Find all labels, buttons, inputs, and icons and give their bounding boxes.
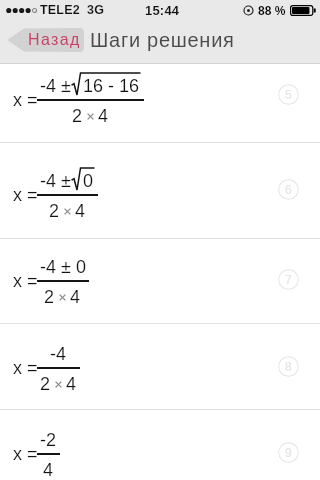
staticText: x = xyxy=(13,358,38,378)
staticText: 2 xyxy=(40,374,51,394)
staticText: 4 xyxy=(43,460,54,480)
staticText: TELE2 xyxy=(40,3,80,17)
staticText: 4 xyxy=(75,201,86,221)
staticText: 4 xyxy=(70,287,81,307)
staticText: -4 xyxy=(50,344,67,364)
staticText: 7 xyxy=(285,273,292,286)
button[interactable]: x = xyxy=(0,239,320,324)
staticText: 2 xyxy=(44,287,55,307)
staticText: 4 xyxy=(66,374,77,394)
staticText: 16 - 16 xyxy=(83,76,140,96)
staticText: x = xyxy=(13,271,38,291)
staticText: 3G xyxy=(87,3,105,17)
staticText: -2 xyxy=(40,430,57,450)
button[interactable]: x = xyxy=(0,410,320,480)
staticText: x = xyxy=(13,444,38,464)
button[interactable]: x = xyxy=(0,324,320,410)
staticText: -4 ± xyxy=(40,76,71,96)
staticText: 5 xyxy=(285,88,292,101)
staticText: 2 xyxy=(49,201,60,221)
staticText: Шаги решения xyxy=(90,29,235,51)
staticText: Назад xyxy=(28,31,81,49)
button[interactable]: x = xyxy=(0,64,320,143)
staticText: 15:44 xyxy=(145,3,180,18)
staticText: 8 xyxy=(285,360,292,373)
staticText: -4 ± xyxy=(40,171,71,191)
staticText: 6 xyxy=(285,183,292,196)
staticText: 9 xyxy=(285,446,292,459)
staticText: x = xyxy=(13,185,38,205)
staticText: 0 xyxy=(83,171,94,191)
button[interactable]: x = xyxy=(0,143,320,239)
staticText: 4 xyxy=(98,106,109,126)
button[interactable]: Назад xyxy=(7,28,84,52)
staticText: x = xyxy=(13,90,38,110)
staticText: 2 xyxy=(72,106,83,126)
staticText: 88 % xyxy=(258,4,286,17)
staticText: -4 ± 0 xyxy=(40,257,86,277)
